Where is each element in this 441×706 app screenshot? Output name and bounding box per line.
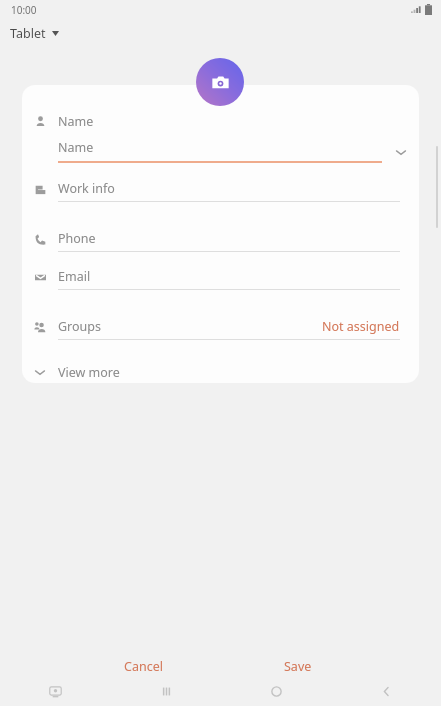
staticText: Email xyxy=(58,268,91,285)
button[interactable]: Expand name xyxy=(382,139,419,165)
button[interactable]: Home xyxy=(221,676,331,706)
staticText: Groups xyxy=(58,318,101,335)
button[interactable]: Tablet xyxy=(10,23,59,43)
staticText: Phone xyxy=(58,230,96,247)
button[interactable]: Screenshot xyxy=(0,676,111,706)
button[interactable]: Phone xyxy=(22,229,419,261)
button[interactable]: Cancel xyxy=(100,653,186,679)
button[interactable]: Add photo xyxy=(196,58,244,106)
button[interactable]: Save xyxy=(259,653,337,679)
button[interactable]: Work info xyxy=(22,179,419,211)
button[interactable]: View more xyxy=(22,362,419,383)
staticText: Name xyxy=(58,113,94,130)
staticText: Not assigned xyxy=(322,318,400,335)
staticText: Cancel xyxy=(124,658,163,675)
staticText: Work info xyxy=(58,180,115,197)
staticText: Save xyxy=(284,658,312,675)
button[interactable]: Name xyxy=(22,139,419,167)
button[interactable]: Recents xyxy=(111,676,221,706)
staticText: Tablet xyxy=(10,25,46,42)
staticText: Name xyxy=(58,139,94,156)
staticText: View more xyxy=(58,364,120,381)
button[interactable]: Email xyxy=(22,267,419,299)
button[interactable]: Groups xyxy=(22,317,419,349)
staticText: 10:00 xyxy=(11,3,37,17)
